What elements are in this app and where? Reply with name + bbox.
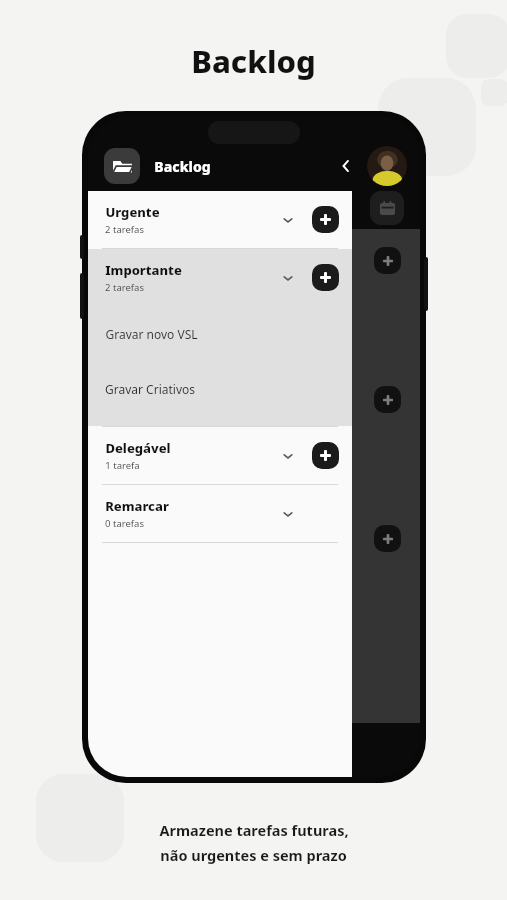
button[interactable]: Delegável: [88, 427, 352, 484]
button[interactable]: Expand: [277, 267, 299, 289]
staticText: Backlog: [154, 157, 211, 176]
staticText: Backlog: [191, 40, 316, 82]
staticText: 2 tarefas: [105, 223, 144, 236]
button[interactable]: Expand: [277, 445, 299, 467]
button[interactable]: Add task: [312, 442, 339, 469]
button[interactable]: Add task: [374, 525, 401, 552]
button[interactable]: Add task: [312, 264, 339, 291]
button[interactable]: Calendar: [370, 191, 404, 225]
staticText: Urgente: [105, 203, 160, 221]
staticText: Armazene tarefas futuras,: [159, 820, 349, 840]
staticText: Delegável: [105, 439, 171, 457]
button[interactable]: Add task: [312, 206, 339, 233]
staticText: 0 tarefas: [105, 517, 144, 530]
staticText: Gravar novo VSL: [105, 326, 198, 342]
button[interactable]: Expand: [277, 503, 299, 525]
button[interactable]: Folder: [104, 148, 140, 184]
button[interactable]: Gravar Criativos: [88, 361, 352, 416]
staticText: Remarcar: [105, 497, 169, 515]
button[interactable]: Add task: [374, 386, 401, 413]
button[interactable]: Gravar novo VSL: [88, 306, 352, 361]
button[interactable]: Expand: [277, 209, 299, 231]
button[interactable]: Profile: [367, 146, 407, 186]
staticText: Gravar Criativos: [105, 381, 195, 397]
button[interactable]: Urgente: [88, 191, 352, 248]
button[interactable]: Back: [333, 153, 359, 179]
staticText: 2 tarefas: [105, 281, 144, 294]
staticText: não urgentes e sem prazo: [160, 845, 347, 865]
staticText: 1 tarefa: [105, 459, 140, 472]
staticText: Importante: [105, 261, 182, 279]
button[interactable]: Add task: [374, 247, 401, 274]
button[interactable]: Remarcar: [88, 485, 352, 542]
button[interactable]: Importante: [88, 249, 352, 306]
